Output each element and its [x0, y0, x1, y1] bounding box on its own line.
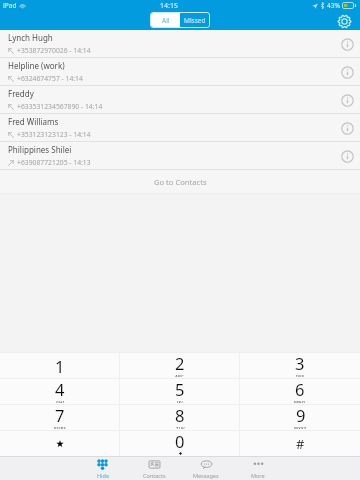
- button[interactable]: Philippines Shilei: [0, 142, 360, 170]
- staticText: 9: [296, 404, 306, 426]
- staticText: ABC: [175, 374, 185, 377]
- button[interactable]: 3: [240, 353, 360, 378]
- staticText: Missed: [184, 16, 206, 25]
- staticText: 1: [55, 355, 65, 377]
- button[interactable]: 4: [0, 379, 120, 404]
- staticText: +6324674757 - 14:14: [17, 74, 83, 83]
- staticText: +633531234567890 - 14:14: [17, 102, 103, 111]
- staticText: #: [296, 435, 305, 453]
- staticText: GHI: [56, 400, 65, 403]
- staticText: 6: [295, 378, 305, 400]
- staticText: Fred Williams: [8, 116, 59, 127]
- staticText: Hide: [97, 472, 109, 479]
- button[interactable]: All: [151, 13, 180, 27]
- button[interactable]: 6: [240, 379, 360, 404]
- button[interactable]: Settings: [336, 13, 352, 29]
- button[interactable]: More: [232, 457, 284, 480]
- button[interactable]: 9: [240, 405, 360, 430]
- button[interactable]: Messages: [180, 457, 232, 480]
- button[interactable]: 7: [0, 405, 120, 430]
- staticText: 7: [55, 404, 65, 426]
- staticText: +353872970026 - 14:14: [17, 46, 91, 55]
- staticText: Messages: [193, 472, 219, 479]
- staticText: 0: [175, 430, 185, 452]
- staticText: JKL: [177, 400, 184, 403]
- staticText: 43%: [327, 1, 340, 10]
- staticText: 3: [295, 352, 305, 374]
- button[interactable]: Star: [0, 431, 120, 456]
- button[interactable]: More info: [334, 59, 360, 85]
- button[interactable]: #: [240, 431, 360, 456]
- button[interactable]: Helpline (work): [0, 58, 360, 86]
- staticText: Philippines Shilei: [8, 144, 72, 155]
- staticText: 2: [175, 352, 185, 374]
- staticText: +353123123123 - 14:14: [17, 130, 91, 139]
- staticText: DEF: [296, 374, 305, 377]
- button[interactable]: More info: [334, 31, 360, 57]
- staticText: Helpline (work): [8, 60, 65, 71]
- button[interactable]: Hide: [76, 457, 128, 480]
- button[interactable]: 8: [120, 405, 240, 430]
- button[interactable]: More info: [334, 143, 360, 169]
- staticText: +639087721205 - 14:13: [17, 158, 91, 167]
- button[interactable]: Freddy: [0, 86, 360, 114]
- button[interactable]: Contacts: [128, 457, 180, 480]
- button[interactable]: 5: [120, 379, 240, 404]
- staticText: 14:15: [160, 1, 178, 11]
- staticText: MNO: [294, 400, 306, 403]
- staticText: All: [162, 16, 170, 25]
- button[interactable]: Lynch Hugh: [0, 30, 360, 58]
- button[interactable]: 0: [120, 431, 240, 456]
- staticText: Contacts: [143, 472, 166, 479]
- staticText: PQRS: [54, 426, 66, 429]
- button[interactable]: Fred Williams: [0, 114, 360, 142]
- staticText: Freddy: [8, 88, 34, 99]
- staticText: More: [251, 472, 265, 479]
- staticText: iPad: [3, 1, 17, 10]
- staticText: Go to Contacts: [154, 177, 207, 187]
- staticText: 5: [175, 378, 185, 400]
- staticText: 8: [175, 404, 185, 426]
- staticText: TUV: [176, 426, 185, 429]
- button[interactable]: More info: [334, 87, 360, 113]
- staticText: WXYZ: [294, 426, 307, 429]
- button[interactable]: Missed: [180, 13, 209, 27]
- staticText: Lynch Hugh: [8, 32, 53, 43]
- button[interactable]: 2: [120, 353, 240, 378]
- staticText: 4: [55, 378, 65, 400]
- button[interactable]: 1: [0, 353, 120, 378]
- button[interactable]: Go to Contacts: [0, 170, 360, 193]
- other: Star: [56, 440, 64, 448]
- button[interactable]: More info: [334, 115, 360, 141]
